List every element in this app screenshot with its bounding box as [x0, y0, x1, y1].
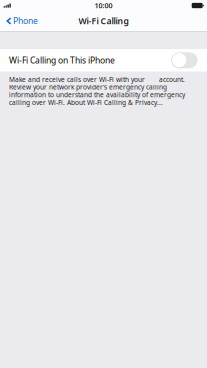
staticText: Phone	[13, 15, 38, 27]
button[interactable]: Phone	[0, 13, 43, 30]
staticText: 10:00	[94, 1, 112, 10]
staticText: Make and receive calls over Wi-Fi with y…	[9, 75, 185, 107]
staticText: Wi-Fi Calling on This iPhone	[9, 54, 115, 66]
button[interactable]: Wi-Fi Calling on This iPhone	[0, 49, 207, 71]
staticText: Wi-Fi Calling	[78, 15, 128, 27]
